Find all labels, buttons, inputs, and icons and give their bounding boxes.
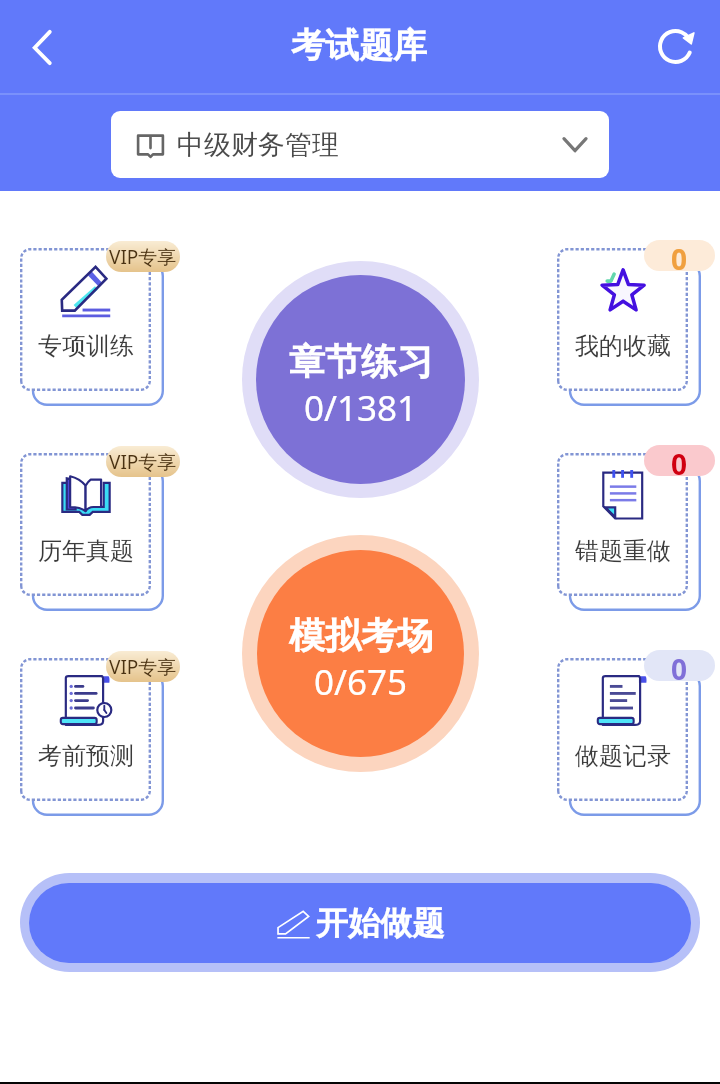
staticText: VIP专享 — [109, 449, 177, 475]
staticText: 0/675 — [314, 658, 408, 706]
button[interactable]: 专项训练 — [20, 248, 151, 391]
button[interactable]: 中级财务管理 — [111, 111, 609, 178]
staticText: VIP专享 — [109, 244, 177, 270]
button[interactable]: Back — [21, 29, 57, 65]
staticText: 专项训练 — [38, 331, 134, 361]
button[interactable]: 考前预测 — [20, 658, 151, 801]
staticText: 0/1381 — [304, 384, 418, 432]
staticText: 章节练习 — [289, 339, 433, 384]
staticText: 开始做题 — [316, 903, 444, 943]
button[interactable]: 开始做题 — [20, 873, 700, 972]
staticText: 历年真题 — [38, 536, 134, 566]
button[interactable]: Refresh — [653, 25, 697, 69]
staticText: 模拟考场 — [289, 613, 433, 658]
button[interactable]: 模拟考场 — [242, 535, 479, 772]
button[interactable]: 我的收藏 — [557, 248, 688, 391]
button[interactable]: 历年真题 — [20, 453, 151, 596]
staticText: 错题重做 — [575, 536, 671, 566]
staticText: 考前预测 — [38, 741, 134, 771]
button[interactable]: 做题记录 — [557, 658, 688, 801]
staticText: 中级财务管理 — [177, 128, 339, 162]
staticText: 考试题库 — [291, 24, 427, 67]
staticText: 0 — [671, 650, 688, 681]
staticText: 0 — [671, 445, 688, 476]
button[interactable]: 章节练习 — [242, 261, 479, 498]
staticText: VIP专享 — [109, 654, 177, 680]
staticText: 0 — [671, 240, 688, 271]
staticText: 我的收藏 — [575, 331, 671, 361]
staticText: 做题记录 — [575, 741, 671, 771]
button[interactable]: 错题重做 — [557, 453, 688, 596]
